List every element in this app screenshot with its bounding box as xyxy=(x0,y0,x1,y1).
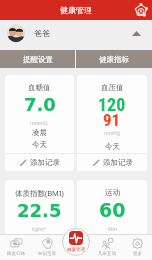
staticText: 健康管理 xyxy=(67,247,85,253)
staticText: 今天 xyxy=(32,234,47,243)
staticText: 添加记录 xyxy=(30,158,60,167)
staticText: 91 xyxy=(103,110,121,130)
staticText: 健康管理 xyxy=(60,5,92,15)
button[interactable]: Reminder alarm xyxy=(133,2,149,18)
button[interactable]: 提醒设置 xyxy=(0,50,75,68)
staticText: 提醒设置 xyxy=(23,55,53,64)
button[interactable]: 运动 xyxy=(77,180,147,260)
staticText: 22.5 xyxy=(17,200,62,221)
button[interactable]: Collapse xyxy=(126,23,146,43)
staticText: 爸爸 xyxy=(34,28,50,38)
staticText: 今天 xyxy=(105,234,120,243)
staticText: mmol/L xyxy=(30,120,49,127)
button[interactable]: 体质指数(BMI) xyxy=(5,180,74,260)
staticText: 知识宝库 xyxy=(38,251,56,257)
staticText: 血糖值 xyxy=(28,83,51,92)
button[interactable]: 血糖值 xyxy=(5,75,74,171)
button[interactable]: 健康指标 xyxy=(76,50,152,68)
staticText: 更多 xyxy=(133,251,142,257)
staticText: 添加记录 xyxy=(30,248,60,257)
button[interactable]: 添加记录 xyxy=(5,154,74,171)
staticText: 7.0 xyxy=(24,94,56,115)
staticText: 运动 xyxy=(105,188,120,197)
button[interactable]: 健康管理 xyxy=(62,228,90,256)
button[interactable]: 糖友心路 xyxy=(0,234,31,260)
button[interactable]: 添加记录 xyxy=(77,154,147,171)
staticText: 血压值 xyxy=(101,83,124,92)
staticText: 添加记录 xyxy=(103,158,133,167)
staticText: 凌晨 xyxy=(32,128,47,137)
staticText: mmHg xyxy=(104,130,121,137)
button[interactable]: 知识宝库 xyxy=(31,234,62,260)
staticText: 今天 xyxy=(32,140,47,149)
staticText: 今天 xyxy=(105,142,120,151)
button[interactable]: 血压值 xyxy=(77,75,147,171)
staticText: 糖友心路 xyxy=(7,251,25,257)
button[interactable]: 爸爸 xyxy=(0,20,152,46)
staticText: 健康指标 xyxy=(99,55,129,64)
staticText: Min xyxy=(108,226,117,233)
staticText: 60 xyxy=(99,199,126,221)
button[interactable]: 添加记录 xyxy=(5,244,74,260)
staticText: 120 xyxy=(98,94,126,115)
button[interactable]: 凡米互动 xyxy=(92,234,122,260)
button[interactable]: 添加记录 xyxy=(77,244,147,260)
button[interactable]: 更多 xyxy=(122,234,152,260)
staticText: kg/m² xyxy=(32,226,47,233)
staticText: 体质指数(BMI) xyxy=(15,188,64,198)
staticText: 添加记录 xyxy=(103,248,133,257)
staticText: 凡米互动 xyxy=(98,251,116,257)
